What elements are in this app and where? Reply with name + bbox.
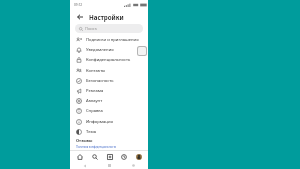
- button[interactable]: Безопасность: [70, 76, 148, 86]
- button[interactable]: Главная: [74, 151, 85, 162]
- staticText: Политика конфиденциальности: [76, 145, 117, 149]
- staticText: Справка: [86, 108, 103, 114]
- button[interactable]: Тема: [70, 127, 148, 137]
- staticText: Контакты: [86, 68, 106, 74]
- button[interactable]: Активность: [118, 151, 129, 162]
- button[interactable]: Контакты: [70, 66, 148, 76]
- button[interactable]: Реклама: [70, 86, 148, 96]
- button[interactable]: Справка: [70, 106, 148, 116]
- button[interactable]: Профиль: [133, 151, 144, 162]
- button[interactable]: Поиск: [75, 24, 143, 33]
- button[interactable]: Информация: [70, 117, 148, 127]
- button[interactable]: Аккаунт: [70, 96, 148, 106]
- button[interactable]: Создать: [104, 151, 115, 162]
- staticText: Отзывы: [76, 138, 93, 143]
- staticText: Тема: [86, 129, 96, 135]
- staticText: Поиск: [85, 26, 97, 31]
- button[interactable]: Конфиденциальность: [70, 55, 148, 65]
- button[interactable]: Floating control: [138, 47, 146, 55]
- button[interactable]: Уведомления: [70, 45, 148, 55]
- staticText: Реклама: [86, 88, 104, 94]
- staticText: Конфиденциальность: [86, 57, 131, 63]
- staticText: Аккаунт: [86, 98, 103, 104]
- staticText: Настройки: [89, 13, 124, 21]
- button[interactable]: Назад: [75, 12, 84, 21]
- staticText: Подписки и приглашения: [86, 37, 139, 43]
- staticText: Уведомления: [86, 47, 114, 53]
- staticText: Безопасность: [86, 78, 114, 84]
- staticText: 09:12: [74, 3, 83, 7]
- button[interactable]: Поиск: [89, 151, 100, 162]
- button[interactable]: Подписки и приглашения: [70, 35, 148, 45]
- staticText: Информация: [86, 119, 113, 125]
